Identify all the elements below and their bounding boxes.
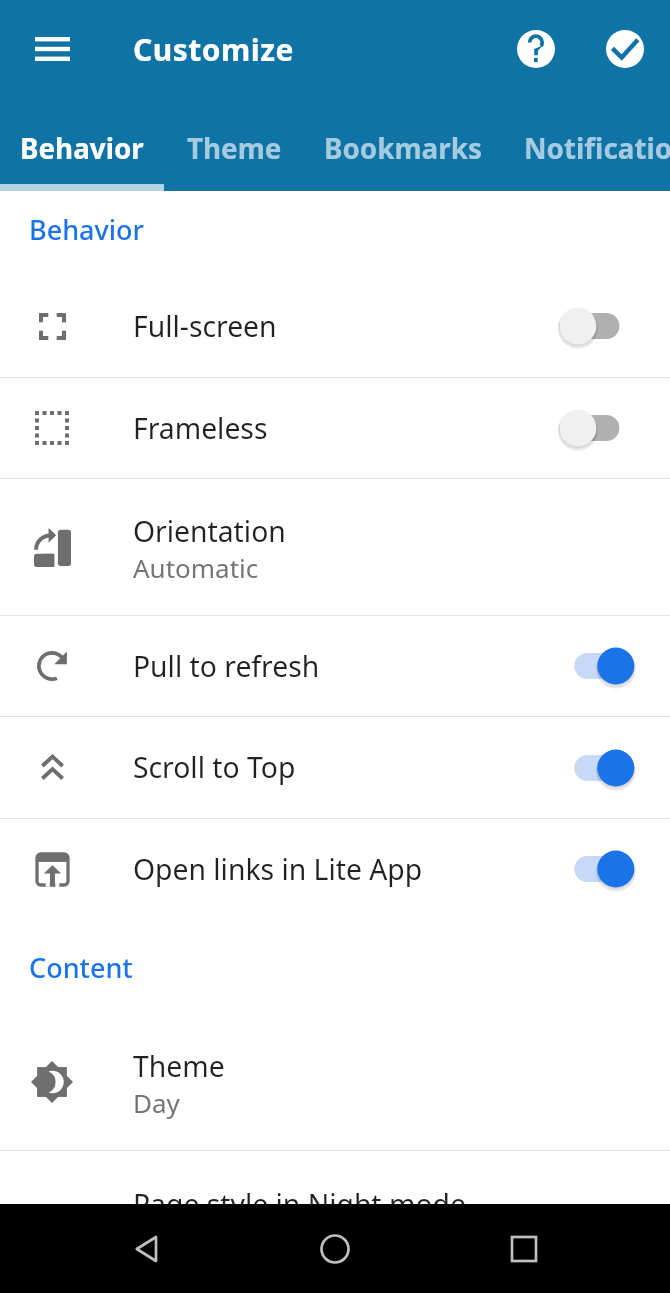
staticText: Behavior <box>29 211 144 248</box>
staticText: Pull to refresh <box>133 647 320 686</box>
button[interactable]: Scroll to Top <box>0 717 670 818</box>
button[interactable]: Done <box>591 15 659 83</box>
staticText: Open links in Lite App <box>133 850 423 889</box>
staticText: Bookmarks <box>324 129 482 167</box>
button[interactable]: Home <box>293 1207 377 1291</box>
button[interactable]: Behavior <box>0 104 164 191</box>
staticText: Content <box>29 949 133 986</box>
button[interactable]: Recent apps <box>482 1207 566 1291</box>
staticText: Day <box>133 1085 180 1120</box>
button[interactable]: Open links in Lite App <box>0 819 670 919</box>
staticText: Notifications <box>524 129 670 167</box>
button[interactable]: Bookmarks <box>305 104 500 191</box>
button[interactable]: Back <box>105 1207 189 1291</box>
button[interactable]: Full-screen <box>0 275 670 377</box>
staticText: Automatic <box>133 550 259 585</box>
button[interactable]: Theme <box>0 1013 670 1150</box>
staticText: Customize <box>133 29 295 70</box>
staticText: Full-screen <box>133 307 277 346</box>
button[interactable]: Pull to refresh <box>0 616 670 716</box>
button[interactable]: Open navigation menu <box>17 14 87 84</box>
staticText: Page style in Night mode <box>133 1185 466 1204</box>
button[interactable]: Frameless <box>0 378 670 478</box>
button[interactable]: Help <box>502 15 570 83</box>
staticText: Theme <box>187 129 282 167</box>
staticText: Frameless <box>133 409 268 448</box>
staticText: Behavior <box>20 129 144 167</box>
button[interactable]: Orientation <box>0 479 670 615</box>
button[interactable]: Notifications <box>500 104 670 191</box>
staticText: Orientation <box>133 512 286 551</box>
button[interactable]: Page style in Night mode <box>0 1151 670 1204</box>
staticText: Scroll to Top <box>133 748 296 787</box>
staticText: Theme <box>133 1047 225 1086</box>
button[interactable]: Theme <box>164 104 305 191</box>
